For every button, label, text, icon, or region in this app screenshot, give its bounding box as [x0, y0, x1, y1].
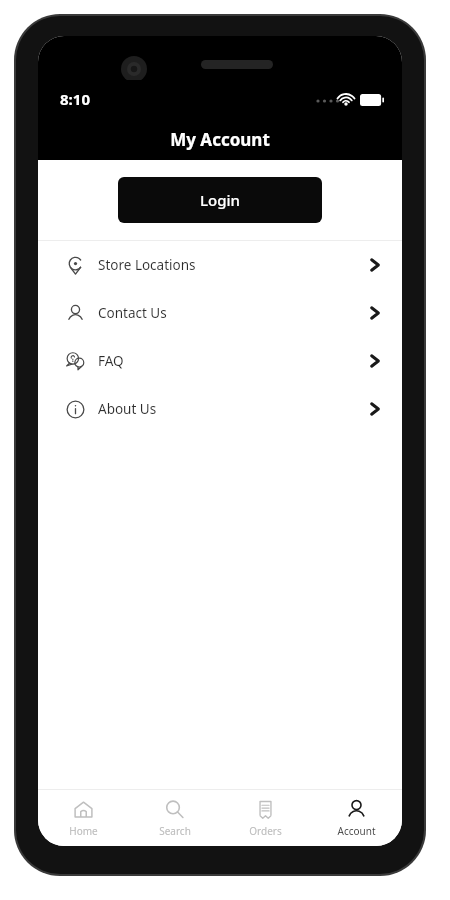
- staticText: Contact Us: [98, 304, 167, 322]
- button[interactable]: Account: [311, 790, 402, 846]
- button[interactable]: Home: [38, 790, 129, 846]
- staticText: Search: [159, 824, 191, 838]
- staticText: My Account: [170, 128, 270, 151]
- button[interactable]: Search: [129, 790, 220, 846]
- button[interactable]: About Us: [38, 385, 402, 433]
- button[interactable]: Store Locations: [38, 241, 402, 289]
- button[interactable]: Contact Us: [38, 289, 402, 337]
- button[interactable]: FAQ: [38, 337, 402, 385]
- button[interactable]: Login: [118, 177, 322, 223]
- staticText: Orders: [249, 824, 282, 838]
- staticText: Home: [69, 824, 98, 838]
- button[interactable]: Orders: [220, 790, 311, 846]
- staticText: FAQ: [98, 352, 124, 370]
- staticText: Account: [337, 824, 376, 838]
- staticText: About Us: [98, 400, 157, 418]
- staticText: Store Locations: [98, 256, 196, 274]
- staticText: 8:10: [60, 89, 90, 109]
- staticText: Login: [200, 190, 240, 210]
